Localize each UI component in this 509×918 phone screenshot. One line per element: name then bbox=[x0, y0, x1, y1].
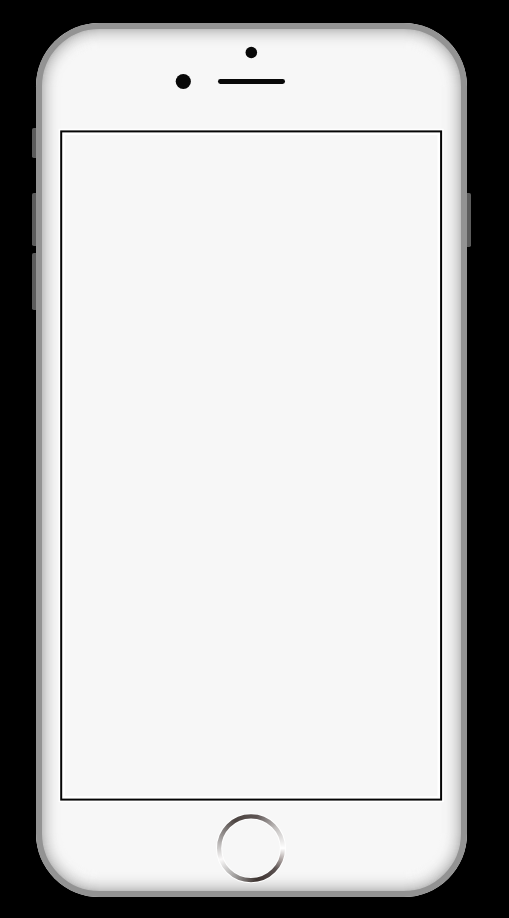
button[interactable]: Volume down bbox=[30, 253, 39, 310]
button[interactable]: Home bbox=[217, 814, 285, 882]
button[interactable]: Ring silent switch bbox=[30, 128, 39, 158]
button[interactable]: Power bbox=[464, 193, 473, 247]
button[interactable]: Volume up bbox=[30, 193, 39, 246]
button[interactable]: Screen bbox=[60, 130, 442, 800]
